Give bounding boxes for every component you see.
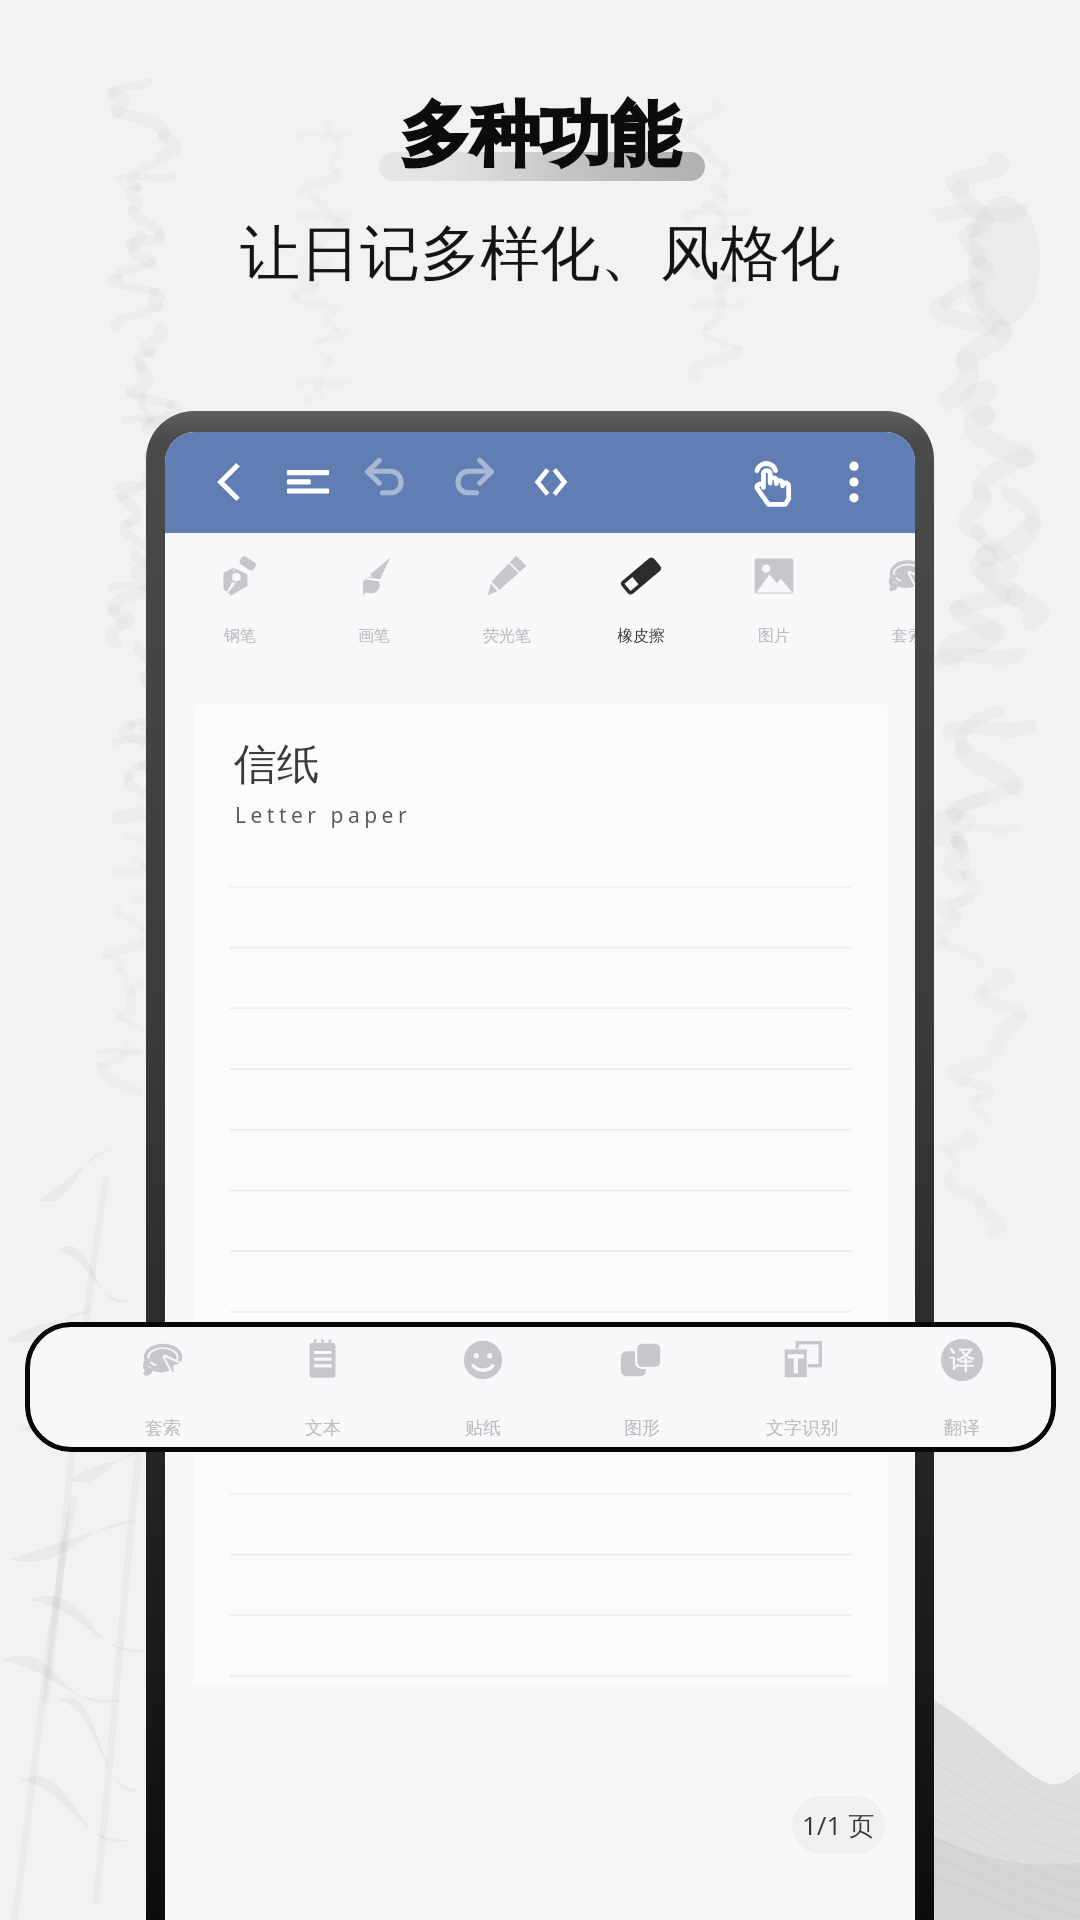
staticText: 多种功能 [400, 92, 680, 180]
button[interactable]: Touch mode [740, 449, 806, 515]
button[interactable]: 画笔 [307, 533, 441, 704]
staticText: 套索 [145, 1417, 181, 1440]
staticText: 画笔 [358, 626, 390, 646]
button[interactable]: 图片 [707, 533, 841, 704]
staticText: 图形 [624, 1417, 660, 1440]
button[interactable]: More options [821, 449, 887, 515]
button[interactable]: Undo [356, 449, 422, 515]
staticText: 文字识别 [766, 1417, 838, 1440]
staticText: 橡皮擦 [617, 626, 665, 646]
button[interactable]: 套索 [88, 1322, 238, 1452]
button[interactable]: 荧光笔 [440, 533, 574, 704]
staticText: 图片 [758, 626, 790, 646]
button[interactable]: 译 [887, 1322, 1037, 1452]
button[interactable]: 图形 [567, 1322, 717, 1452]
button[interactable]: Back [196, 449, 262, 515]
staticText: Letter paper [235, 801, 412, 830]
staticText: 让日记多样化、风格化 [240, 216, 840, 292]
staticText: 信纸 [234, 738, 320, 792]
staticText: 荧光笔 [483, 626, 531, 646]
button[interactable]: 套索 [841, 533, 915, 704]
button[interactable]: 1/1 页 [792, 1796, 885, 1854]
staticText: 译 [949, 1344, 975, 1377]
button[interactable]: 钢笔 [173, 533, 307, 704]
button[interactable]: 文本 [248, 1322, 398, 1452]
staticText: 文本 [305, 1417, 341, 1440]
button[interactable]: 文字识别 [727, 1322, 877, 1452]
button[interactable]: 橡皮擦 [574, 533, 708, 704]
button[interactable]: 贴纸 [408, 1322, 558, 1452]
staticText: 套索 [892, 626, 915, 646]
button[interactable]: Code view [518, 449, 584, 515]
staticText: 翻译 [944, 1417, 980, 1440]
staticText: 贴纸 [465, 1417, 501, 1440]
staticText: 1/1 页 [802, 1807, 875, 1843]
staticText: 钢笔 [224, 626, 256, 646]
button[interactable]: Redo [437, 449, 503, 515]
button[interactable]: Menu [275, 449, 341, 515]
